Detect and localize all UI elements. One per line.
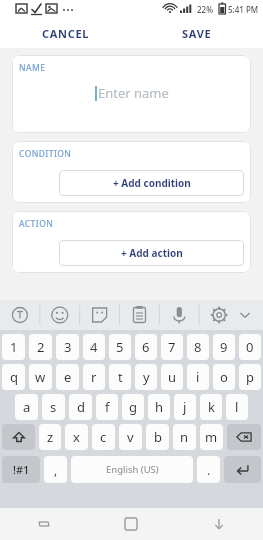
button[interactable]: 8 bbox=[187, 334, 209, 360]
button[interactable]: !#1 bbox=[2, 456, 40, 483]
staticText: b bbox=[154, 428, 162, 446]
staticText: ACTION bbox=[19, 218, 54, 230]
button[interactable]: d bbox=[69, 394, 92, 420]
staticText: 6 bbox=[142, 338, 150, 356]
button[interactable]: a bbox=[15, 394, 38, 420]
button[interactable]: CANCEL bbox=[0, 18, 131, 48]
button[interactable]: m bbox=[200, 424, 223, 450]
button[interactable]: b bbox=[146, 424, 169, 450]
staticText: + Add action bbox=[121, 246, 183, 260]
staticText: u bbox=[168, 368, 177, 386]
button[interactable]: y bbox=[135, 364, 157, 390]
button[interactable]: 9 bbox=[213, 334, 235, 360]
button[interactable]: Emoji bbox=[39, 300, 78, 330]
staticText: c bbox=[100, 428, 107, 446]
button[interactable]: 1 bbox=[2, 334, 25, 360]
button[interactable]: c bbox=[92, 424, 115, 450]
staticText: + Add condition bbox=[113, 176, 191, 190]
button[interactable]: Shift bbox=[2, 424, 35, 450]
button[interactable]: s bbox=[42, 394, 65, 420]
staticText: 7 bbox=[168, 338, 176, 356]
button[interactable]: 6 bbox=[135, 334, 157, 360]
staticText: i bbox=[196, 368, 200, 386]
button[interactable]: g bbox=[122, 394, 144, 420]
button[interactable]: k bbox=[200, 394, 222, 420]
button[interactable]: v bbox=[119, 424, 142, 450]
button[interactable]: Recents bbox=[0, 508, 87, 540]
staticText: 4 bbox=[90, 338, 98, 356]
button[interactable]: 0 bbox=[239, 334, 261, 360]
staticText: p bbox=[246, 368, 254, 386]
button[interactable]: 4 bbox=[83, 334, 105, 360]
staticText: v bbox=[127, 428, 134, 446]
button[interactable]: 2 bbox=[29, 334, 52, 360]
button[interactable]: + Add condition bbox=[59, 170, 244, 196]
staticText: 8 bbox=[194, 338, 202, 356]
button[interactable]: 3 bbox=[56, 334, 79, 360]
button[interactable]: English (US) bbox=[71, 456, 193, 483]
button[interactable]: n bbox=[173, 424, 196, 450]
staticText: g bbox=[129, 398, 137, 416]
button[interactable]: , bbox=[44, 456, 67, 483]
button[interactable]: q bbox=[2, 364, 25, 390]
button[interactable]: 7 bbox=[161, 334, 183, 360]
staticText: 9 bbox=[220, 338, 228, 356]
staticText: h bbox=[155, 398, 164, 416]
button[interactable]: o bbox=[213, 364, 235, 390]
button[interactable]: x bbox=[65, 424, 88, 450]
staticText: r bbox=[91, 368, 97, 386]
staticText: 5:41 PM bbox=[228, 4, 259, 15]
staticText: s bbox=[50, 398, 57, 416]
staticText: CONDITION bbox=[19, 148, 72, 160]
staticText: 1 bbox=[10, 338, 18, 356]
button[interactable]: e bbox=[56, 364, 79, 390]
button[interactable]: Collapse toolbar bbox=[230, 300, 263, 330]
staticText: o bbox=[220, 368, 228, 386]
button[interactable]: . bbox=[197, 456, 220, 483]
staticText: z bbox=[47, 428, 54, 446]
button[interactable]: f bbox=[96, 394, 118, 420]
button[interactable]: Keyboard settings bbox=[192, 300, 230, 330]
staticText: CANCEL bbox=[42, 26, 90, 41]
button[interactable]: u bbox=[161, 364, 183, 390]
staticText: 22% bbox=[197, 4, 213, 15]
button[interactable]: l bbox=[226, 394, 248, 420]
staticText: 2 bbox=[37, 338, 45, 356]
button[interactable]: Home bbox=[87, 508, 175, 540]
staticText: f bbox=[105, 398, 110, 416]
staticText: l bbox=[235, 398, 239, 416]
button[interactable]: Hide keyboard bbox=[175, 508, 263, 540]
button[interactable]: Backspace bbox=[227, 424, 261, 450]
button[interactable]: Enter bbox=[224, 456, 261, 483]
button[interactable]: Voice input bbox=[154, 300, 192, 330]
staticText: j bbox=[183, 398, 187, 416]
staticText: w bbox=[35, 368, 46, 386]
staticText: k bbox=[208, 398, 215, 416]
button[interactable]: 5 bbox=[109, 334, 131, 360]
staticText: SAVE bbox=[182, 26, 212, 41]
staticText: q bbox=[10, 368, 18, 386]
button[interactable]: j bbox=[174, 394, 196, 420]
staticText: , bbox=[54, 462, 58, 478]
button[interactable]: Clipboard bbox=[116, 300, 154, 330]
button[interactable]: Stickers bbox=[78, 300, 116, 330]
staticText: NAME bbox=[19, 62, 46, 74]
button[interactable]: z bbox=[39, 424, 61, 450]
button[interactable]: Translate bbox=[0, 300, 39, 330]
button[interactable]: h bbox=[148, 394, 170, 420]
staticText: x bbox=[73, 428, 80, 446]
staticText: 3 bbox=[64, 338, 72, 356]
button[interactable]: w bbox=[29, 364, 52, 390]
button[interactable]: r bbox=[83, 364, 105, 390]
staticText: 5 bbox=[116, 338, 124, 356]
staticText: d bbox=[77, 398, 85, 416]
staticText: !#1 bbox=[13, 462, 30, 477]
button[interactable]: + Add action bbox=[59, 240, 244, 266]
button[interactable]: i bbox=[187, 364, 209, 390]
button[interactable]: p bbox=[239, 364, 261, 390]
button[interactable]: SAVE bbox=[131, 18, 263, 48]
staticText: 0 bbox=[246, 338, 254, 356]
staticText: e bbox=[64, 368, 72, 386]
button[interactable]: NAME bbox=[12, 55, 251, 133]
button[interactable]: t bbox=[109, 364, 131, 390]
